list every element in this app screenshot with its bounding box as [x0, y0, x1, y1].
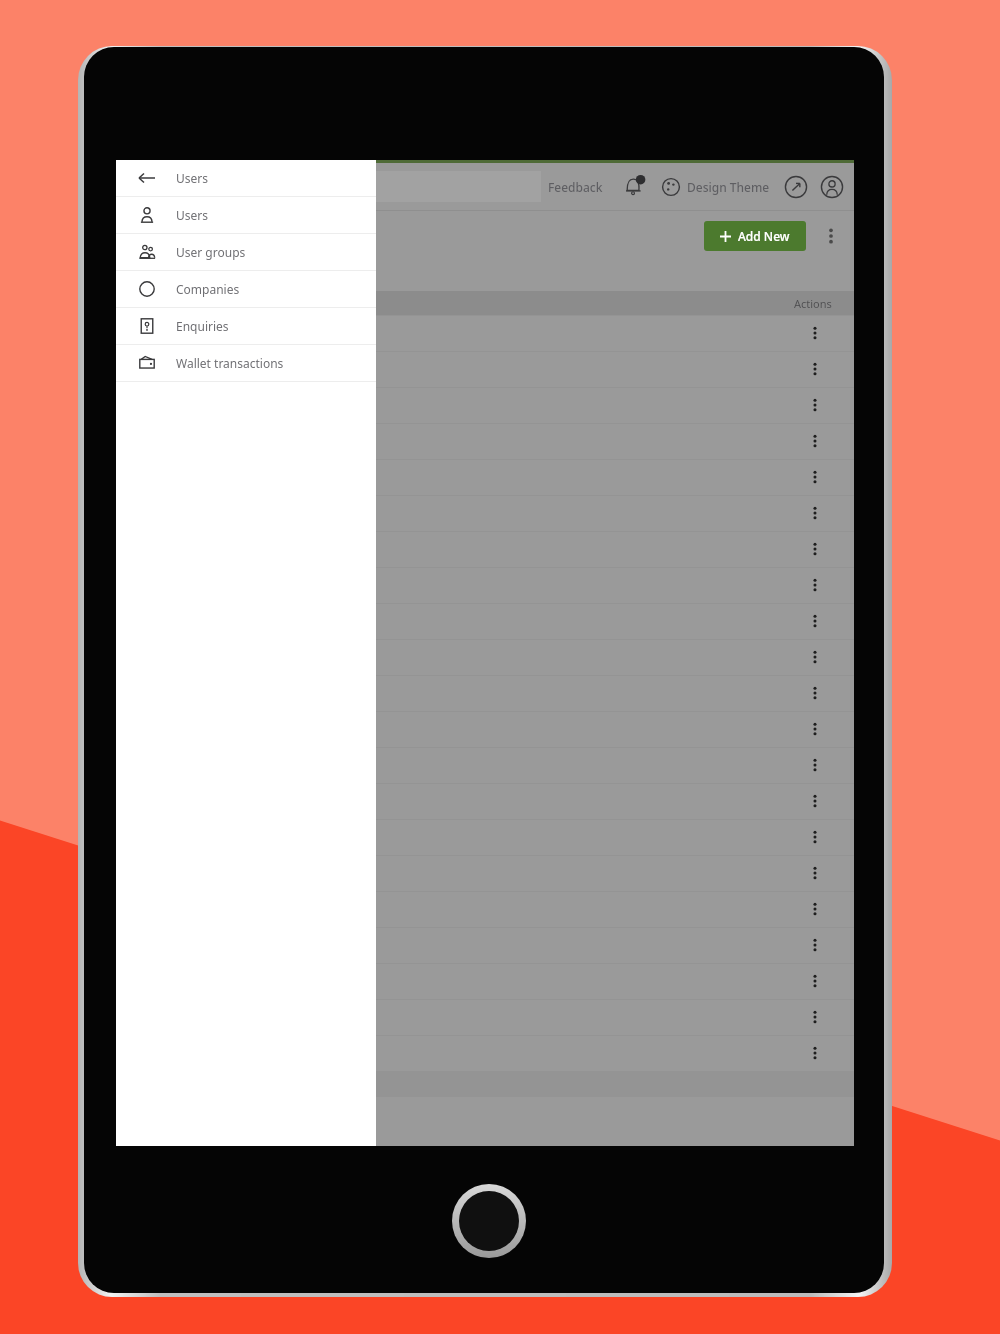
button[interactable]: Open link	[784, 175, 808, 199]
button[interactable]: Row actions	[116, 459, 854, 495]
staticText: Wallet transactions	[176, 355, 284, 371]
button[interactable]: Users	[116, 197, 376, 233]
button[interactable]: Row actions	[806, 540, 824, 558]
staticText: Search	[136, 179, 174, 195]
staticText: Enquiries	[176, 318, 229, 334]
button[interactable]: Row actions	[116, 819, 854, 855]
staticText: User groups	[176, 244, 246, 260]
button[interactable]: Row actions	[806, 432, 824, 450]
button[interactable]: Home	[452, 1184, 526, 1258]
staticText: Design Theme	[687, 179, 770, 195]
button[interactable]: Wallet transactions	[116, 345, 376, 381]
button[interactable]: Row actions	[806, 648, 824, 666]
button[interactable]: Row actions	[116, 891, 854, 927]
button[interactable]: Row actions	[806, 468, 824, 486]
button[interactable]: Design Theme	[661, 177, 770, 197]
button[interactable]: Row actions	[116, 423, 854, 459]
button[interactable]: Row actions	[806, 324, 824, 342]
button[interactable]: Row actions	[116, 531, 854, 567]
button[interactable]: Feedback	[542, 179, 609, 195]
button[interactable]: Row actions	[806, 396, 824, 414]
button[interactable]: Row actions	[116, 711, 854, 747]
button[interactable]: Row actions	[806, 792, 824, 810]
button[interactable]: Row actions	[116, 603, 854, 639]
button[interactable]: Row actions	[116, 351, 854, 387]
button[interactable]: Row actions	[116, 639, 854, 675]
button[interactable]: Row actions	[806, 720, 824, 738]
button[interactable]: Row actions	[806, 900, 824, 918]
button[interactable]: Row actions	[806, 828, 824, 846]
staticText: Users	[176, 207, 208, 223]
staticText: Users	[176, 170, 208, 186]
button[interactable]: Search	[126, 171, 541, 202]
staticText: Add New	[738, 228, 790, 244]
button[interactable]: Row actions	[116, 999, 854, 1035]
button[interactable]: Row actions	[806, 864, 824, 882]
button[interactable]: Add New	[704, 221, 806, 251]
button[interactable]: Row actions	[116, 783, 854, 819]
button[interactable]: Row actions	[116, 315, 854, 351]
button[interactable]: Row actions	[116, 387, 854, 423]
button[interactable]: Row actions	[806, 1008, 824, 1026]
button[interactable]: Row actions	[806, 612, 824, 630]
button[interactable]: Row actions	[116, 927, 854, 963]
button[interactable]: Row actions	[806, 756, 824, 774]
button[interactable]: Row actions	[116, 747, 854, 783]
button[interactable]: More options	[820, 225, 842, 247]
button[interactable]: Account	[820, 175, 844, 199]
button[interactable]: Users	[116, 160, 376, 196]
button[interactable]: Row actions	[806, 504, 824, 522]
button[interactable]: Companies	[116, 271, 376, 307]
button[interactable]: Row actions	[806, 1044, 824, 1062]
button[interactable]: Row actions	[806, 972, 824, 990]
button[interactable]: Row actions	[116, 963, 854, 999]
button[interactable]: Row actions	[116, 567, 854, 603]
button[interactable]: Row actions	[116, 855, 854, 891]
button[interactable]: Row actions	[116, 675, 854, 711]
button[interactable]: Row actions	[116, 1035, 854, 1071]
button[interactable]: Row actions	[806, 936, 824, 954]
button[interactable]: Enquiries	[116, 308, 376, 344]
button[interactable]: Notifications	[621, 173, 649, 201]
button[interactable]: Row actions	[116, 495, 854, 531]
button[interactable]: Row actions	[806, 684, 824, 702]
button[interactable]: Row actions	[806, 360, 824, 378]
staticText: Feedback	[548, 179, 603, 195]
button[interactable]: Row actions	[806, 576, 824, 594]
button[interactable]: User groups	[116, 234, 376, 270]
staticText: Actions	[794, 296, 832, 311]
staticText: Companies	[176, 281, 240, 297]
